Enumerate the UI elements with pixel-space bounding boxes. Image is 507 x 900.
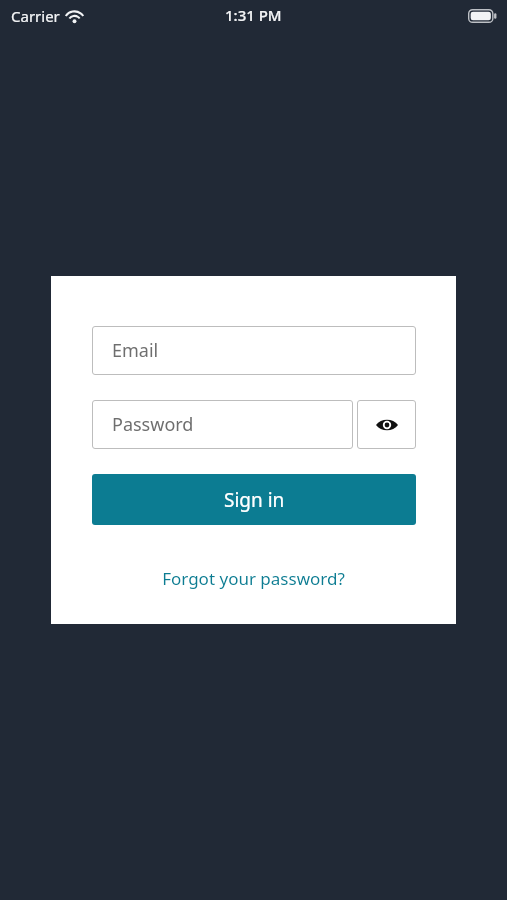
staticText: 1:31 PM [225,5,282,25]
staticText: Carrier [11,6,60,26]
button[interactable]: Sign in [92,474,416,525]
button[interactable]: Password [92,400,353,449]
button[interactable]: Email [92,326,416,375]
staticText: Forgot your password? [162,567,345,590]
staticText: Sign in [224,487,285,513]
staticText: Email [112,338,159,363]
staticText: Password [112,412,194,437]
button[interactable]: Show password [357,400,416,449]
button[interactable]: Forgot your password? [51,561,456,595]
